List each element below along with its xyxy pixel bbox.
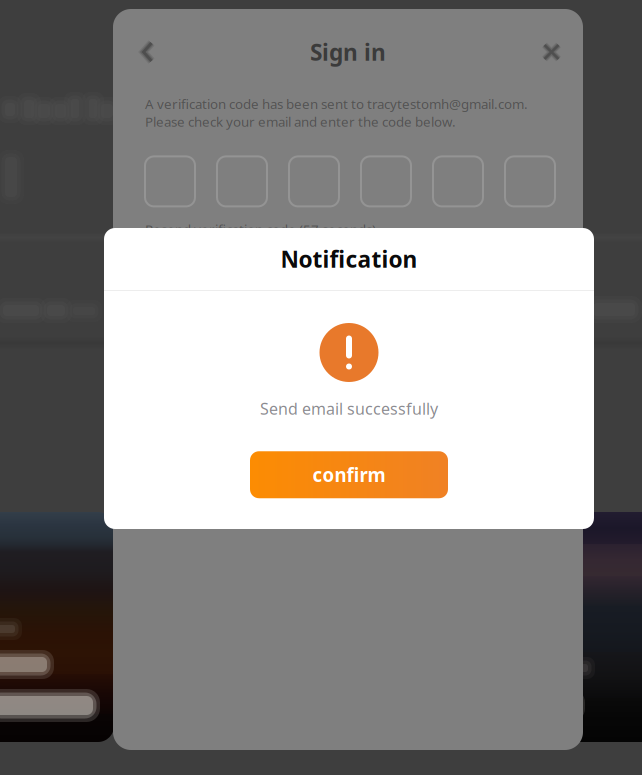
staticText: confirm — [312, 462, 385, 487]
staticText: Resend verification code (57 seconds) — [145, 220, 376, 238]
staticText: Notification — [280, 244, 417, 274]
button[interactable]: Back — [128, 27, 167, 77]
staticText: A verification code has been sent to tra… — [145, 95, 528, 130]
staticText: Send email successfully — [260, 398, 438, 419]
button[interactable]: confirm — [250, 451, 448, 498]
button[interactable]: Close — [530, 30, 573, 73]
staticText: Sign in — [310, 37, 386, 67]
